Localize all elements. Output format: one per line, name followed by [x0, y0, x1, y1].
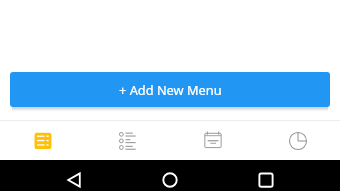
staticText: + Add New Menu	[119, 81, 222, 98]
button[interactable]: Home	[149, 160, 191, 191]
button[interactable]: Recent apps	[245, 160, 287, 191]
button[interactable]: Orders	[85, 120, 170, 160]
button[interactable]: Reports	[255, 120, 340, 160]
button[interactable]: Back	[53, 160, 95, 191]
button[interactable]: Notes	[170, 120, 255, 160]
button[interactable]: + Add New Menu	[10, 72, 330, 107]
button[interactable]: Menu	[0, 120, 85, 160]
